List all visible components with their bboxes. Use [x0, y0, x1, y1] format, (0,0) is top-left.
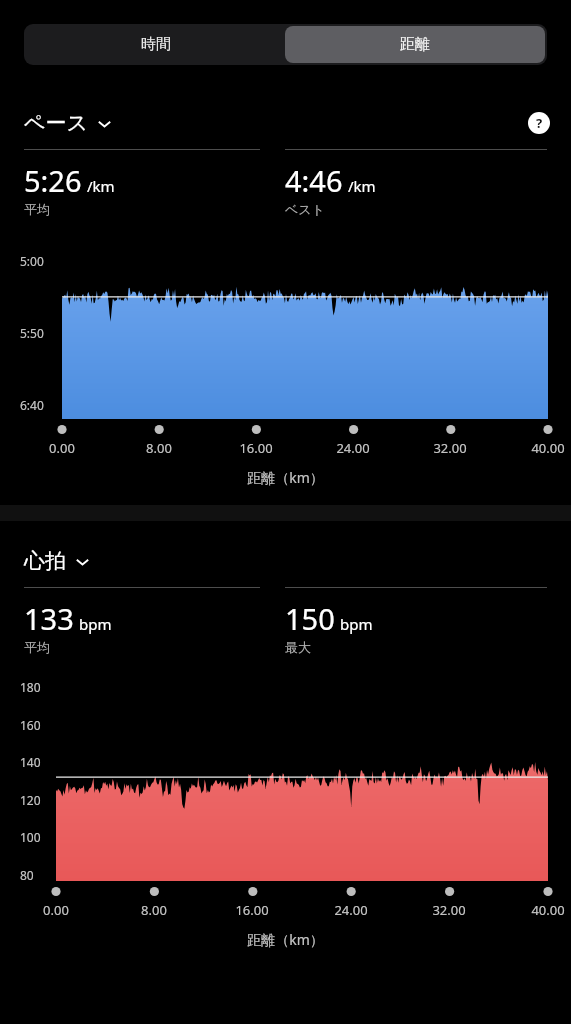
staticText: /km	[87, 176, 115, 196]
staticText: 180	[20, 679, 41, 695]
staticText: 距離	[400, 35, 430, 54]
staticText: 6:40	[20, 397, 44, 413]
button[interactable]: ペース	[24, 110, 112, 136]
button[interactable]: 時間	[26, 26, 285, 63]
staticText: bpm	[340, 614, 373, 634]
staticText: 0.00	[49, 439, 75, 457]
staticText: 心拍	[24, 548, 66, 574]
staticText: 32.00	[432, 901, 466, 919]
staticText: bpm	[79, 614, 112, 634]
staticText: 120	[20, 792, 41, 808]
button[interactable]: 心拍	[24, 548, 90, 574]
staticText: /km	[348, 176, 376, 196]
staticText: 4:46	[285, 161, 343, 200]
button[interactable]: Help	[528, 112, 550, 134]
staticText: 5:00	[20, 253, 44, 269]
staticText: 24.00	[334, 901, 368, 919]
staticText: 40.00	[531, 901, 565, 919]
staticText: 5:50	[20, 325, 44, 341]
staticText: 133	[24, 599, 74, 638]
staticText: ?	[536, 114, 543, 132]
staticText: 距離（km）	[0, 930, 571, 949]
staticText: 0.00	[43, 901, 69, 919]
staticText: 時間	[141, 35, 171, 54]
staticText: 140	[20, 754, 41, 770]
button[interactable]: 距離	[285, 26, 545, 63]
staticText: 距離（km）	[0, 468, 571, 487]
staticText: 40.00	[531, 439, 565, 457]
staticText: 32.00	[433, 439, 467, 457]
staticText: 最大	[285, 639, 311, 655]
staticText: 80	[20, 867, 34, 883]
staticText: 5:26	[24, 161, 82, 200]
staticText: 平均	[24, 639, 50, 655]
staticText: ベスト	[285, 201, 325, 217]
staticText: 16.00	[235, 901, 269, 919]
staticText: 平均	[24, 201, 50, 217]
staticText: 150	[285, 599, 335, 638]
staticText: 24.00	[336, 439, 370, 457]
staticText: 8.00	[141, 901, 167, 919]
staticText: 160	[20, 717, 41, 733]
staticText: 8.00	[146, 439, 172, 457]
staticText: 100	[20, 829, 41, 845]
staticText: 16.00	[239, 439, 273, 457]
staticText: ペース	[24, 110, 88, 136]
